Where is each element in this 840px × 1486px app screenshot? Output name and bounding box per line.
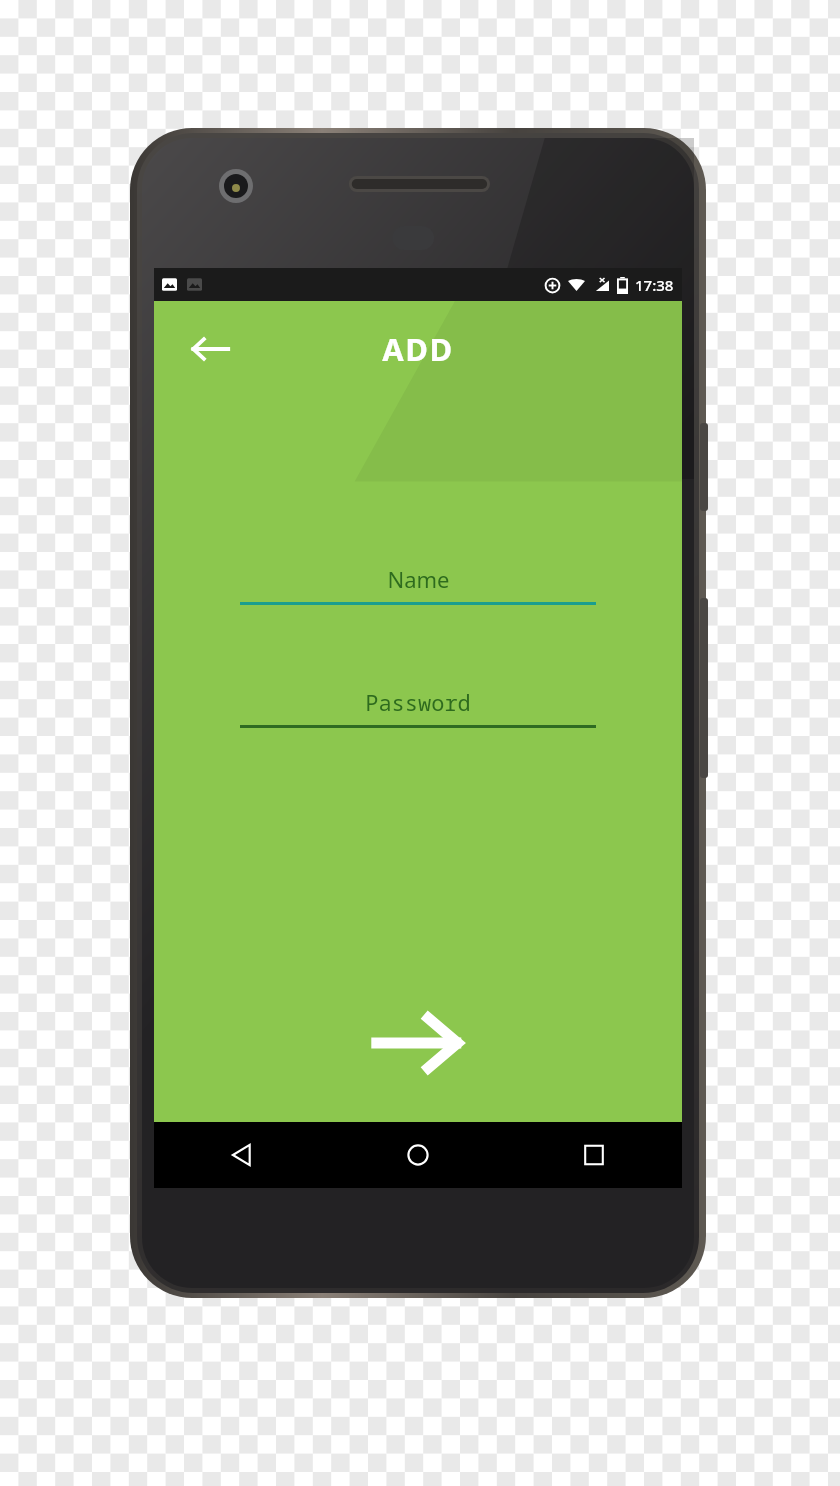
staticText: Name — [387, 564, 450, 594]
staticText: 17:38 — [635, 275, 674, 295]
button[interactable]: Next — [370, 995, 466, 1091]
staticText: ADD — [382, 328, 454, 370]
button[interactable]: Name — [240, 564, 596, 605]
button[interactable]: Back — [180, 319, 240, 379]
staticText: Password — [365, 687, 471, 717]
button[interactable]: Home — [330, 1122, 506, 1188]
button[interactable]: Password — [240, 687, 596, 728]
button[interactable]: Recent apps — [506, 1122, 682, 1188]
button[interactable]: Back — [154, 1122, 330, 1188]
